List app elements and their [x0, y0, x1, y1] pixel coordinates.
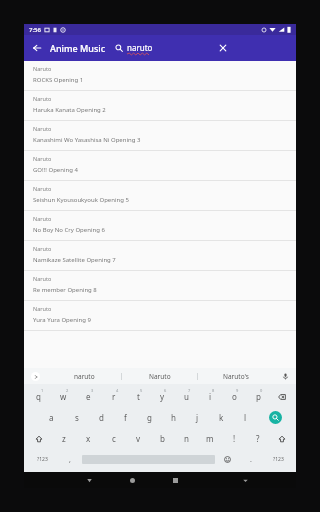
- staticText: Haruka Kanata Opening 2: [33, 106, 106, 114]
- button[interactable]: Naruto: [122, 368, 198, 384]
- button[interactable]: 8: [198, 386, 222, 407]
- button[interactable]: l: [233, 407, 257, 428]
- button[interactable]: Shift: [26, 428, 51, 449]
- staticText: n: [184, 433, 189, 444]
- button[interactable]: ,: [58, 449, 82, 470]
- button[interactable]: c: [101, 428, 126, 449]
- button[interactable]: Naruto: [24, 151, 296, 181]
- staticText: d: [99, 412, 104, 423]
- button[interactable]: 2: [51, 386, 76, 407]
- staticText: b: [160, 433, 165, 444]
- button[interactable]: Naruto: [24, 61, 296, 91]
- button[interactable]: Emoji: [215, 449, 239, 470]
- staticText: Seishun Kyousoukyouk Opening 5: [33, 196, 129, 204]
- staticText: y: [160, 391, 165, 402]
- button[interactable]: Naruto: [24, 211, 296, 241]
- button[interactable]: !: [222, 428, 246, 449]
- button[interactable]: Naruto: [24, 91, 296, 121]
- staticText: Re member Opening 8: [33, 286, 97, 294]
- staticText: o: [232, 391, 237, 402]
- button[interactable]: Back: [76, 472, 103, 488]
- staticText: Naruto: [33, 155, 52, 162]
- staticText: Naruto: [33, 275, 52, 282]
- button[interactable]: Naruto: [24, 271, 296, 301]
- button[interactable]: x: [76, 428, 101, 449]
- staticText: No Boy No Cry Opening 6: [33, 226, 105, 234]
- button[interactable]: f: [113, 407, 137, 428]
- button[interactable]: j: [185, 407, 209, 428]
- button[interactable]: Naruto: [24, 181, 296, 211]
- button[interactable]: Shift: [270, 428, 294, 449]
- staticText: t: [137, 391, 140, 402]
- button[interactable]: Expand suggestions: [24, 368, 46, 384]
- button[interactable]: ?123: [263, 449, 294, 470]
- staticText: Namikaze Satellite Opening 7: [33, 256, 116, 264]
- button[interactable]: Recent apps: [162, 472, 189, 488]
- staticText: ,: [69, 455, 71, 465]
- button[interactable]: b: [150, 428, 174, 449]
- staticText: Naruto: [33, 125, 52, 132]
- staticText: c: [112, 433, 116, 444]
- button[interactable]: m: [198, 428, 222, 449]
- staticText: ROCKS Opening 1: [33, 76, 84, 84]
- staticText: 5: [140, 388, 143, 393]
- button[interactable]: Hide keyboard: [232, 472, 259, 488]
- button[interactable]: naruto: [127, 42, 153, 53]
- staticText: m: [206, 433, 214, 444]
- button[interactable]: 3: [76, 386, 101, 407]
- staticText: r: [112, 391, 116, 402]
- button[interactable]: Voice input: [274, 368, 296, 384]
- button[interactable]: 7: [174, 386, 198, 407]
- button[interactable]: v: [126, 428, 150, 449]
- button[interactable]: Naruto: [24, 121, 296, 151]
- button[interactable]: Home: [119, 472, 146, 488]
- button[interactable]: n: [174, 428, 198, 449]
- staticText: 9: [236, 388, 239, 393]
- button[interactable]: Naruto's: [198, 368, 274, 384]
- staticText: .: [250, 455, 252, 465]
- button[interactable]: Search: [257, 407, 294, 428]
- button[interactable]: 9: [222, 386, 246, 407]
- staticText: ?123: [273, 456, 284, 463]
- staticText: g: [147, 412, 152, 423]
- button[interactable]: z: [51, 428, 76, 449]
- button[interactable]: Naruto: [24, 301, 296, 331]
- staticText: p: [256, 391, 261, 402]
- staticText: h: [171, 412, 176, 423]
- button[interactable]: naruto: [46, 368, 122, 384]
- button[interactable]: Anime Music: [50, 42, 106, 54]
- button[interactable]: Back: [24, 35, 50, 61]
- button[interactable]: Backspace: [270, 386, 294, 407]
- button[interactable]: s: [64, 407, 89, 428]
- button[interactable]: 0: [246, 386, 270, 407]
- button[interactable]: k: [209, 407, 233, 428]
- button[interactable]: ?: [246, 428, 270, 449]
- button[interactable]: h: [161, 407, 185, 428]
- staticText: Naruto's: [223, 372, 249, 381]
- staticText: 8: [212, 388, 215, 393]
- staticText: !: [233, 433, 236, 444]
- other: Search: [115, 44, 123, 52]
- button[interactable]: d: [89, 407, 113, 428]
- button[interactable]: 6: [150, 386, 174, 407]
- staticText: ?123: [37, 456, 48, 463]
- button[interactable]: 5: [126, 386, 150, 407]
- button[interactable]: a: [39, 407, 64, 428]
- button[interactable]: 1: [26, 386, 51, 407]
- button[interactable]: ?123: [26, 449, 58, 470]
- staticText: Naruto: [33, 185, 52, 192]
- button[interactable]: Clear search: [210, 35, 236, 61]
- staticText: 4: [116, 388, 119, 393]
- button[interactable]: 4: [101, 386, 126, 407]
- button[interactable]: Naruto: [24, 241, 296, 271]
- staticText: j: [196, 412, 199, 423]
- staticText: ?: [256, 433, 260, 444]
- staticText: 6: [164, 388, 167, 393]
- staticText: Yura Yura Opening 9: [33, 316, 91, 324]
- staticText: q: [36, 391, 41, 402]
- staticText: GO!!! Opening 4: [33, 166, 78, 174]
- button[interactable]: g: [137, 407, 161, 428]
- staticText: Kanashimi Wo Yasashisa Ni Opening 3: [33, 136, 141, 144]
